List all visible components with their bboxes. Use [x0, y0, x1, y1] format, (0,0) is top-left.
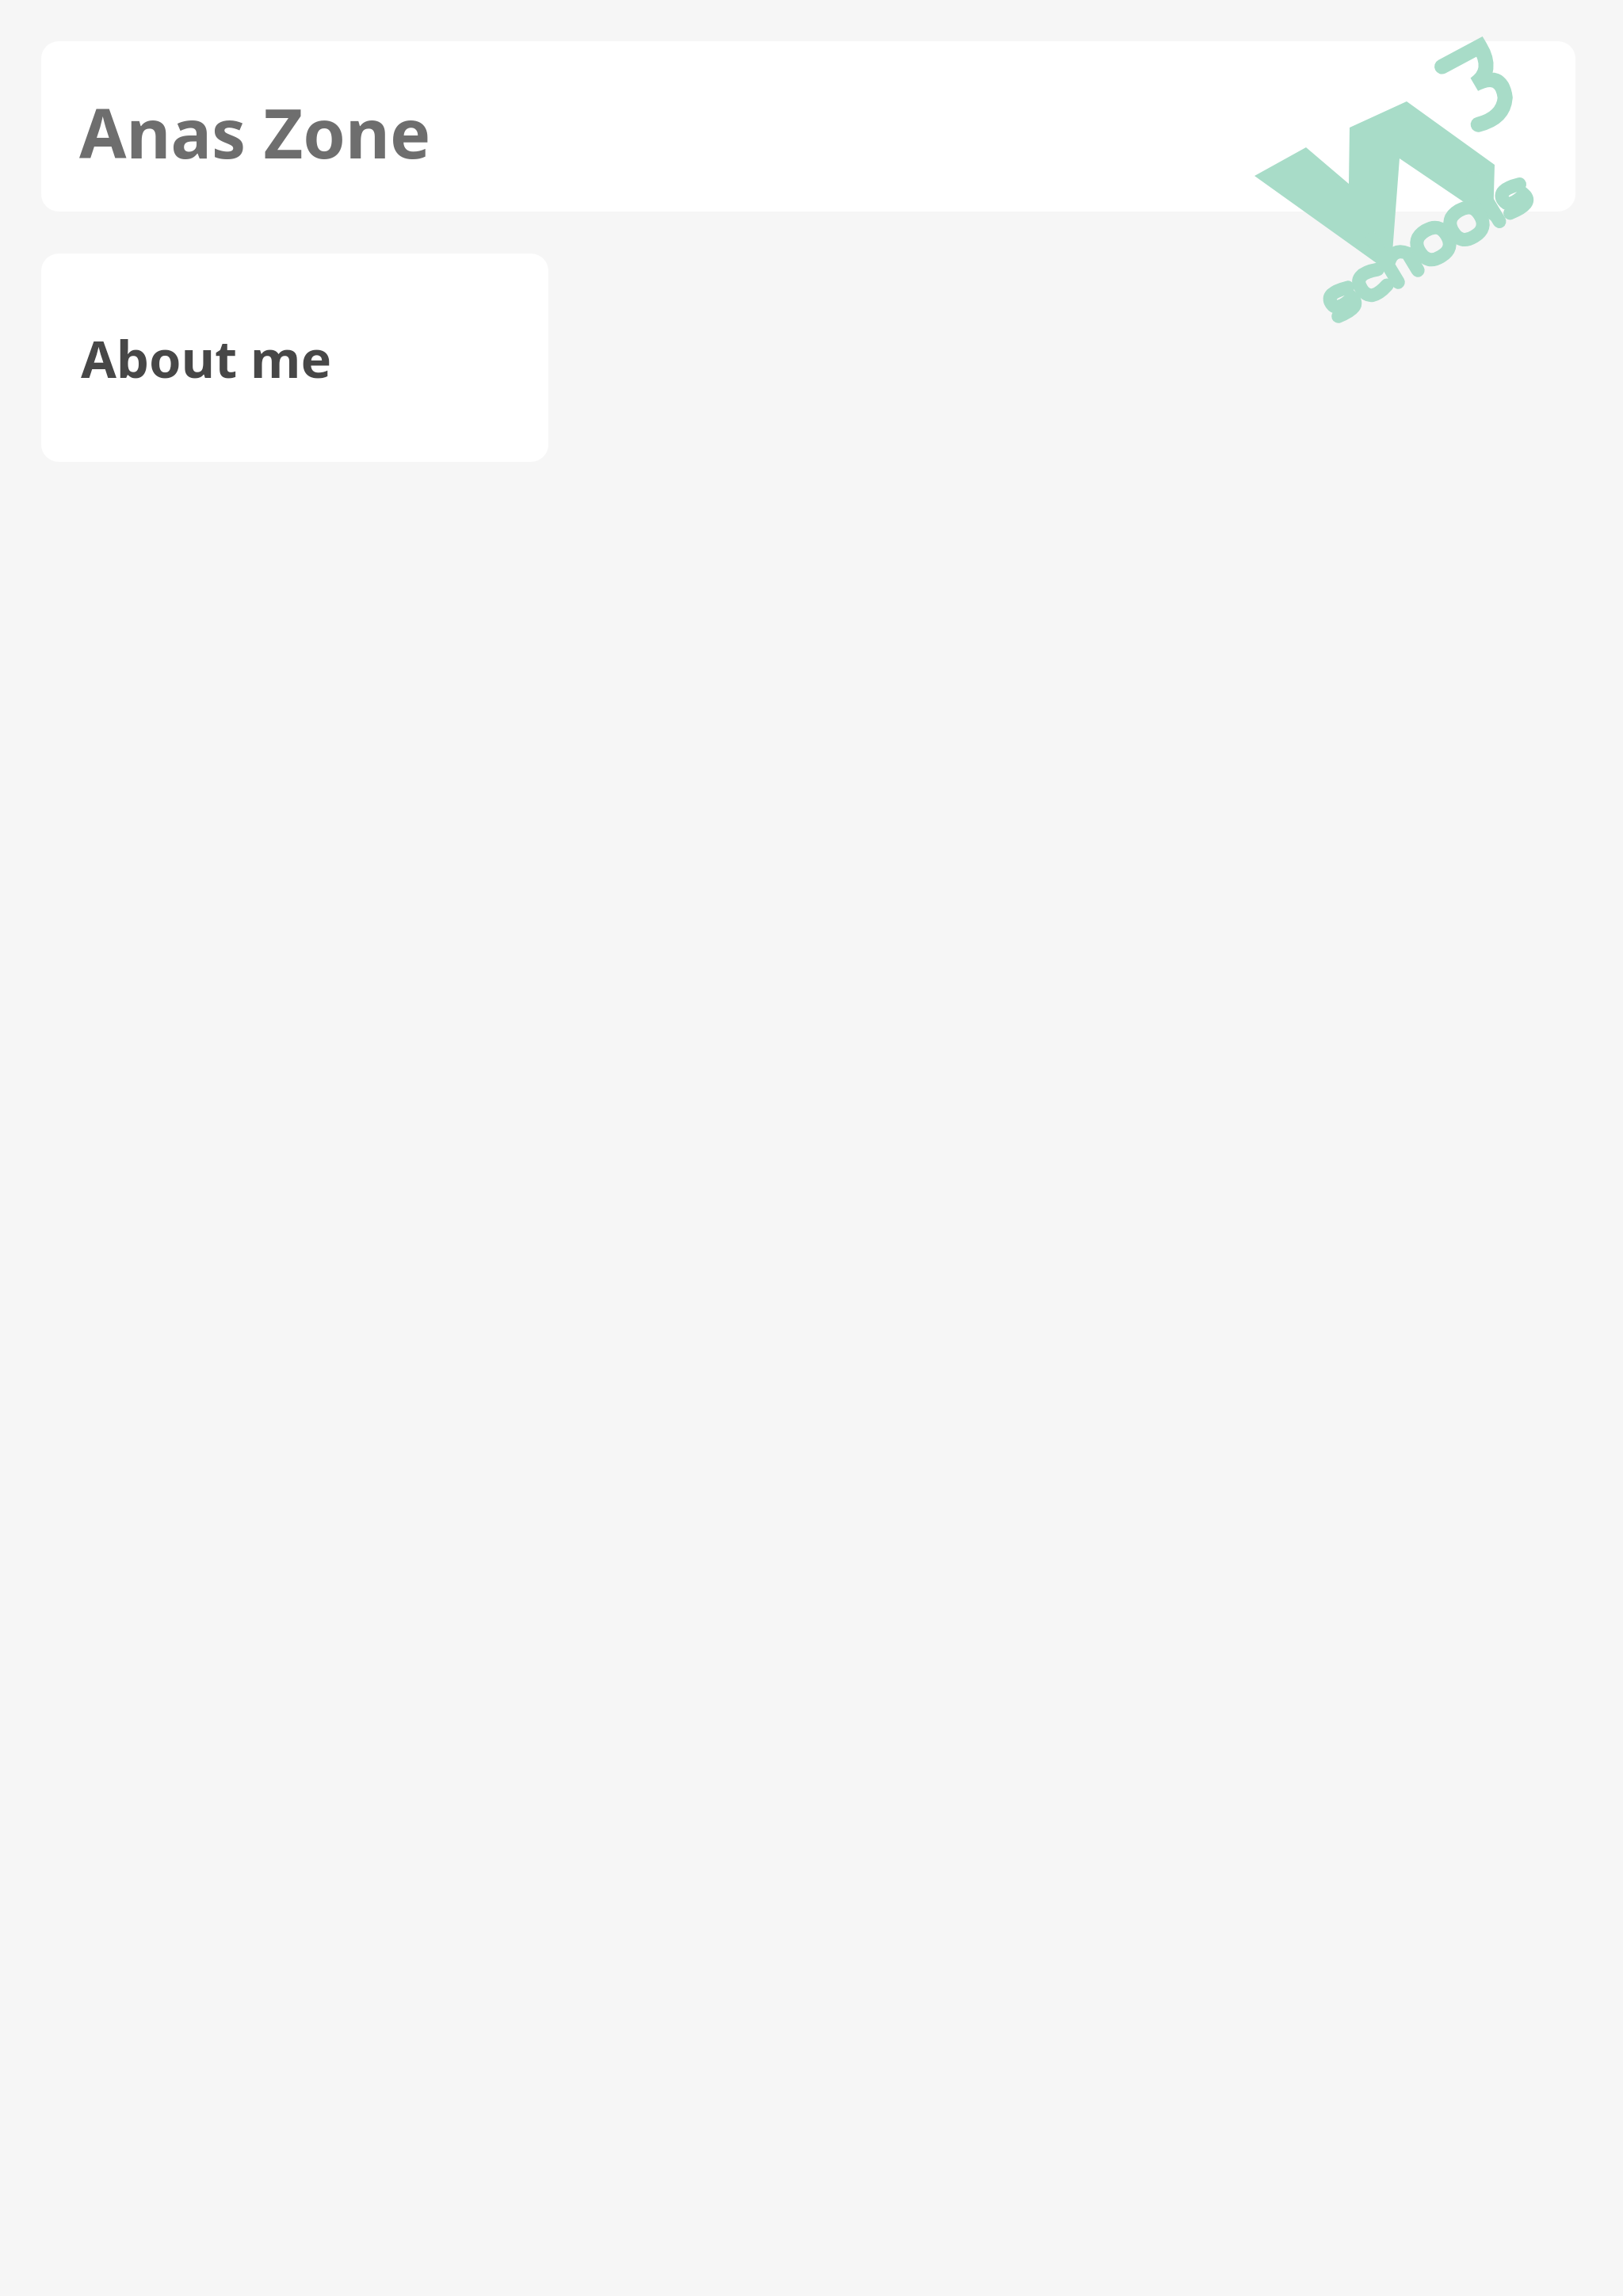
staticText: About me	[81, 323, 332, 394]
staticText: Anas Zone	[79, 86, 431, 178]
button[interactable]: Anas Zone	[41, 41, 1575, 212]
button[interactable]: About me	[41, 254, 548, 462]
other: w3schools logo	[0, 0, 1623, 2296]
